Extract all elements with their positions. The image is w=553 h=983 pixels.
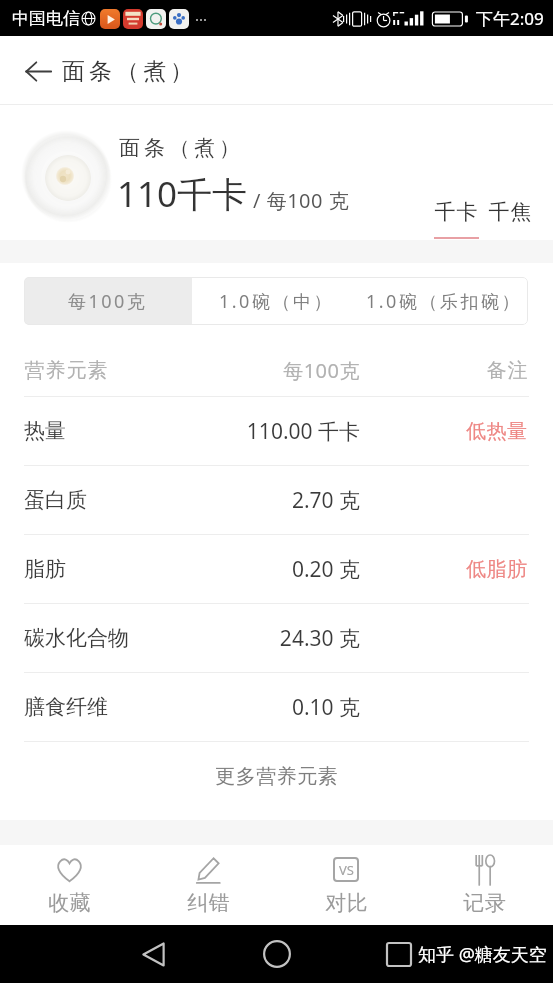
staticText: 1.0碗（中） (219, 289, 334, 314)
button[interactable]: 蛋白质 (0, 466, 553, 534)
staticText: 0.20 克 (0, 555, 360, 584)
button[interactable]: 千焦 (487, 199, 533, 225)
staticText: 110.00 千卡 (0, 417, 360, 446)
staticText: 每100克 (0, 357, 360, 384)
button[interactable]: 收藏 (0, 845, 139, 925)
staticText: 营养元素 (24, 358, 108, 383)
button[interactable]: VS (277, 845, 415, 925)
staticText: 中国电信 (12, 8, 80, 29)
button[interactable]: 1.0碗（中） (192, 277, 360, 325)
staticText: 蛋白质 (24, 487, 87, 513)
button[interactable]: 热量 (0, 397, 553, 465)
staticText: 更多营养元素 (215, 764, 338, 789)
staticText: 低脂肪 (466, 557, 528, 582)
button[interactable]: 1.0碗（乐扣碗） (360, 277, 528, 325)
staticText: 知乎 @糖友天空 (418, 942, 547, 967)
staticText: 面条（煮） (117, 135, 242, 161)
staticText: 24.30 克 (0, 624, 360, 653)
staticText: 备注 (486, 358, 528, 383)
staticText: 0.10 克 (0, 693, 360, 722)
staticText: 每100克 (68, 289, 148, 314)
staticText: 收藏 (48, 890, 91, 916)
button[interactable]: 膳食纤维 (0, 673, 553, 741)
staticText: 纠错 (187, 890, 230, 916)
button[interactable]: 更多营养元素 (0, 742, 553, 811)
staticText: 碳水化合物 (24, 625, 129, 651)
button[interactable]: 脂肪 (0, 535, 553, 603)
staticText: 下午2:09 (476, 7, 544, 30)
button[interactable]: Recent apps (379, 934, 419, 974)
staticText: 对比 (325, 890, 368, 916)
staticText: 低热量 (466, 419, 528, 444)
staticText: 110千卡 (117, 170, 248, 218)
button[interactable]: Back (17, 50, 59, 92)
button[interactable]: 记录 (415, 845, 553, 925)
staticText: 千卡 (434, 199, 478, 225)
button[interactable]: 每100克 (24, 277, 192, 325)
staticText: / 每100 克 (253, 187, 350, 214)
button[interactable]: 碳水化合物 (0, 604, 553, 672)
button[interactable]: Home (257, 934, 297, 974)
button[interactable]: 千卡 (432, 199, 479, 225)
staticText: 膳食纤维 (24, 694, 108, 720)
staticText: ··· (195, 9, 208, 29)
staticText: 面条（煮） (60, 57, 195, 86)
staticText: 记录 (463, 890, 506, 916)
staticText: 热量 (24, 418, 66, 444)
staticText: 千焦 (488, 199, 532, 225)
staticText: VS (339, 861, 354, 879)
staticText: 脂肪 (24, 556, 66, 582)
staticText: 2.70 克 (0, 486, 360, 515)
staticText: 1.0碗（乐扣碗） (366, 289, 522, 314)
button[interactable]: Back (133, 934, 173, 974)
button[interactable]: 纠错 (139, 845, 277, 925)
